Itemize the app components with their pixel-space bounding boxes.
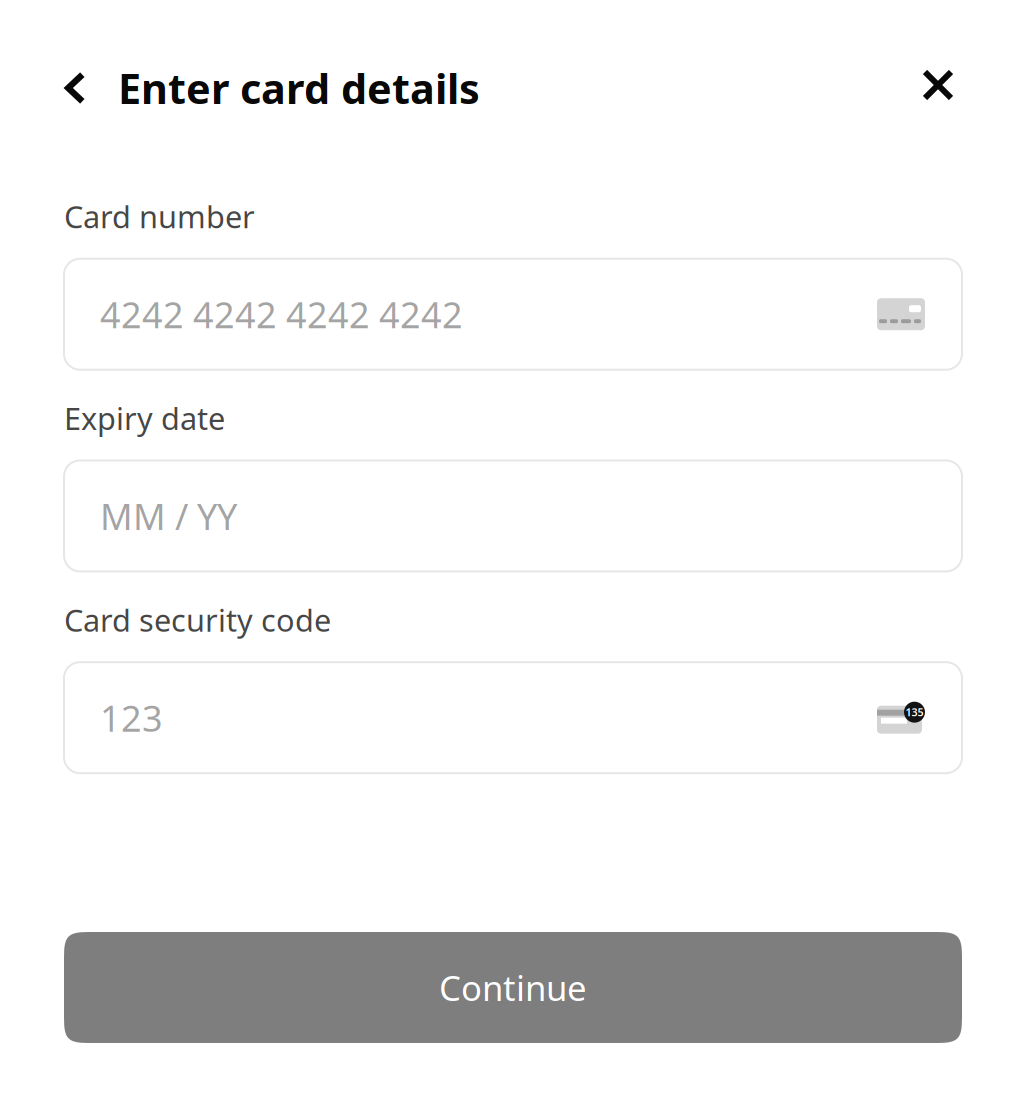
button[interactable]: 123 — [64, 662, 962, 773]
staticText: 123 — [100, 694, 163, 742]
staticText: Enter card details — [118, 61, 480, 115]
staticText: Expiry date — [64, 398, 225, 438]
button[interactable]: 4242 4242 4242 4242 — [64, 259, 962, 370]
button[interactable]: MM / YY — [64, 460, 962, 571]
button[interactable]: Back — [64, 55, 108, 121]
staticText: Continue — [439, 964, 587, 1010]
button[interactable]: Continue — [64, 932, 962, 1043]
staticText: MM / YY — [100, 492, 237, 540]
staticText: 4242 4242 4242 4242 — [100, 290, 463, 338]
staticText: 135 — [905, 705, 923, 719]
button[interactable]: Close — [902, 55, 954, 121]
staticText: Card number — [64, 196, 255, 237]
staticText: Card security code — [64, 599, 331, 640]
